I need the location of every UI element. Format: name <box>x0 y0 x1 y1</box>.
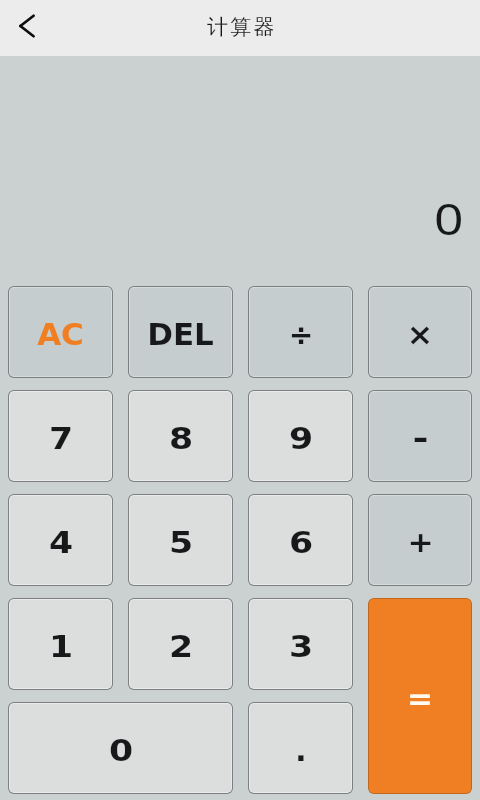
staticText: 8 <box>169 420 193 456</box>
staticText: AC <box>37 316 84 352</box>
button[interactable]: 5 <box>128 494 233 586</box>
button[interactable]: 9 <box>248 390 353 482</box>
staticText: 9 <box>289 420 313 456</box>
staticText: . <box>295 732 307 768</box>
staticText: 6 <box>289 524 313 560</box>
button[interactable]: . <box>248 702 353 794</box>
button[interactable]: 2 <box>128 598 233 690</box>
button[interactable]: Back <box>0 0 54 56</box>
staticText: 计算器 <box>207 14 277 40</box>
staticText: 0 <box>434 189 464 248</box>
staticText: × <box>406 317 434 352</box>
staticText: ÷ <box>289 316 313 352</box>
button[interactable]: ÷ <box>248 286 353 378</box>
button[interactable]: 0 <box>8 702 233 794</box>
staticText: 7 <box>49 420 73 456</box>
button[interactable]: 8 <box>128 390 233 482</box>
button[interactable]: + <box>368 494 472 586</box>
button[interactable]: 4 <box>8 494 113 586</box>
staticText: - <box>412 420 429 456</box>
staticText: 2 <box>169 628 193 664</box>
button[interactable]: AC <box>8 286 113 378</box>
button[interactable]: 1 <box>8 598 113 690</box>
staticText: 5 <box>169 524 193 560</box>
staticText: + <box>407 525 434 559</box>
button[interactable]: 7 <box>8 390 113 482</box>
staticText: = <box>407 680 433 716</box>
button[interactable]: × <box>368 286 472 378</box>
staticText: 4 <box>49 524 73 560</box>
button[interactable]: - <box>368 390 472 482</box>
staticText: 1 <box>49 628 73 664</box>
staticText: DEL <box>147 316 214 352</box>
button[interactable]: 3 <box>248 598 353 690</box>
staticText: 3 <box>289 628 313 664</box>
button[interactable]: = <box>368 598 472 794</box>
button[interactable]: DEL <box>128 286 233 378</box>
button[interactable]: 6 <box>248 494 353 586</box>
staticText: 0 <box>109 732 133 768</box>
